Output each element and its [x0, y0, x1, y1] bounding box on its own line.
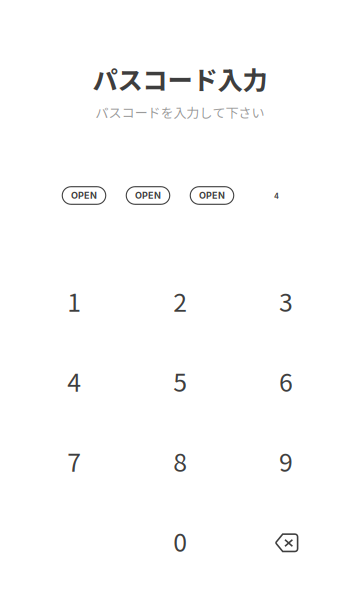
staticText: 6: [279, 363, 293, 399]
button[interactable]: 3: [233, 261, 338, 341]
staticText: 5: [173, 363, 187, 399]
button[interactable]: 1: [22, 261, 127, 341]
staticText: 4: [274, 192, 279, 200]
staticText: 2: [173, 283, 187, 319]
staticText: OPEN: [71, 190, 97, 201]
staticText: パスコードを入力して下さい: [95, 103, 264, 121]
staticText: 9: [279, 443, 293, 479]
staticText: 8: [173, 443, 187, 479]
staticText: 7: [67, 443, 81, 479]
button[interactable]: 2: [128, 261, 233, 341]
staticText: 3: [279, 283, 293, 319]
staticText: 4: [67, 363, 81, 399]
button[interactable]: 4: [22, 341, 127, 421]
staticText: 0: [173, 523, 187, 559]
staticText: OPEN: [135, 190, 161, 201]
staticText: パスコード入力: [92, 60, 267, 97]
button[interactable]: 9: [233, 421, 338, 501]
button[interactable]: 7: [22, 421, 127, 501]
button[interactable]: 8: [128, 421, 233, 501]
button[interactable]: 5: [128, 341, 233, 421]
button[interactable]: 6: [233, 341, 338, 421]
staticText: OPEN: [199, 190, 225, 201]
button[interactable]: 0: [128, 501, 233, 581]
staticText: 1: [67, 283, 81, 319]
button[interactable]: Delete: [233, 503, 338, 583]
